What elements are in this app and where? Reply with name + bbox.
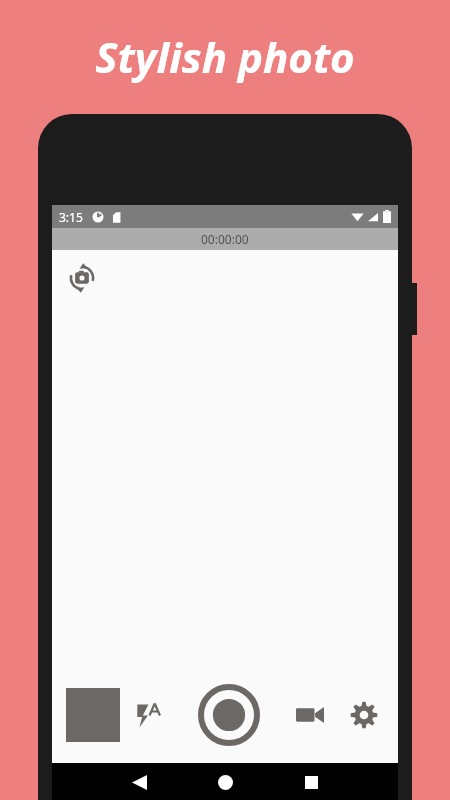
- button[interactable]: Recent apps: [294, 765, 328, 799]
- button[interactable]: Back: [122, 765, 156, 799]
- button[interactable]: Settings: [344, 695, 384, 735]
- staticText: Stylish photo: [95, 28, 355, 85]
- staticText: 00:00:00: [201, 231, 249, 247]
- button[interactable]: Switch camera: [62, 258, 102, 298]
- button[interactable]: Home: [208, 765, 242, 799]
- staticText: 3:15: [59, 209, 83, 225]
- button[interactable]: Flash auto: [130, 696, 168, 734]
- button[interactable]: Take photo: [196, 682, 262, 748]
- button[interactable]: Record video: [290, 695, 330, 735]
